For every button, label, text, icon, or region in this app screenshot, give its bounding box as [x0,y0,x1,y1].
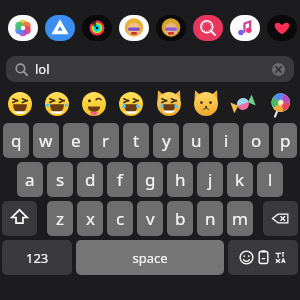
button[interactable]: z [47,201,73,236]
staticText: lol [35,60,50,78]
button[interactable]: Clear text [272,63,285,76]
button[interactable]: k [227,162,253,197]
button[interactable]: Cat with tears of joy [153,88,185,120]
button[interactable]: x [77,201,103,236]
staticText: n [205,207,216,230]
button[interactable]: Memoji [119,15,149,41]
staticText: u [191,129,202,152]
button[interactable]: Fitness [82,15,112,41]
staticText: f [117,168,123,191]
button[interactable]: r [93,123,119,158]
button[interactable]: n [197,201,223,236]
staticText: d [85,168,96,191]
button[interactable]: d [77,162,103,197]
button[interactable]: Rolling on the floor laughing [41,88,73,120]
button[interactable]: Grinning squinting face [4,88,36,120]
button[interactable]: p [273,123,297,158]
button[interactable]: e [63,123,89,158]
staticText: k [235,168,245,191]
button[interactable]: Emoji, clipboard and language [228,240,298,275]
button[interactable]: q [3,123,29,158]
button[interactable]: b [167,201,193,236]
staticText: m [232,207,248,230]
staticText: h [175,168,186,191]
button[interactable]: h [167,162,193,197]
button[interactable]: c [107,201,133,236]
button[interactable]: m [227,201,253,236]
staticText: j [208,168,213,191]
button[interactable]: space [76,240,224,275]
button[interactable]: App Store [45,15,75,41]
staticText: g [145,168,156,191]
button[interactable]: o [243,123,269,158]
staticText: z [56,207,64,230]
button[interactable]: g [137,162,163,197]
staticText: c [116,207,125,230]
button[interactable]: Lollipop [264,88,296,120]
button[interactable]: Backspace [263,201,298,236]
button[interactable]: a [17,162,43,197]
button[interactable]: Shift [2,201,37,236]
staticText: a [25,168,35,191]
staticText: 123 [26,249,49,267]
staticText: t [133,129,140,152]
button[interactable]: j [197,162,223,197]
button[interactable]: Candy [227,88,259,120]
button[interactable]: u [183,123,209,158]
staticText: v [146,207,155,230]
button[interactable]: Photos [8,15,38,41]
staticText: space [132,249,168,267]
staticText: s [56,168,65,191]
button[interactable]: t [123,123,149,158]
button[interactable]: w [33,123,59,158]
staticText: r [102,129,110,152]
staticText: l [268,168,273,191]
staticText: i [224,129,229,152]
button[interactable]: lol [6,56,294,82]
button[interactable]: v [137,201,163,236]
button[interactable]: Cat face [190,88,222,120]
staticText: p [280,129,291,152]
staticText: e [71,129,81,152]
button[interactable]: f [107,162,133,197]
button[interactable]: i [213,123,239,158]
staticText: y [162,129,171,152]
staticText: x [86,207,95,230]
button[interactable]: Health [267,15,297,41]
button[interactable]: Face with tears of joy [115,88,147,120]
button[interactable]: y [153,123,179,158]
staticText: b [175,207,186,230]
button[interactable]: Winking face with tongue [78,88,110,120]
staticText: w [39,129,53,152]
staticText: q [11,129,22,152]
button[interactable]: Memoji dark [156,15,186,41]
button[interactable]: 123 [2,240,72,275]
button[interactable]: Safari [193,15,223,41]
button[interactable]: l [257,162,283,197]
button[interactable]: Music [230,15,260,41]
staticText: o [251,129,262,152]
button[interactable]: s [47,162,73,197]
